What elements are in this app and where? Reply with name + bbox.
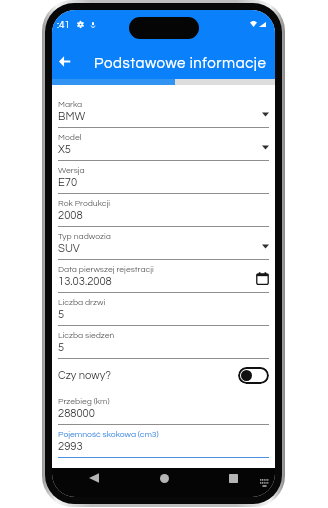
staticText: Podstawowe informacje bbox=[94, 56, 267, 71]
button[interactable]: Back bbox=[54, 50, 76, 72]
staticText: Model bbox=[58, 133, 82, 142]
staticText: 5 bbox=[58, 342, 65, 354]
button[interactable]: Liczba siedzeń bbox=[58, 326, 269, 359]
staticText: Liczba drzwi bbox=[58, 298, 106, 307]
button[interactable]: Liczba drzwi bbox=[58, 293, 269, 326]
staticText: Wersja bbox=[58, 166, 85, 175]
button[interactable]: Typ nadwozia bbox=[58, 227, 269, 260]
staticText: SUV bbox=[58, 243, 80, 255]
button[interactable]: Marka bbox=[58, 95, 269, 128]
button[interactable]: Data pierwszej rejestracji bbox=[58, 260, 269, 293]
staticText: Przebieg (km) bbox=[58, 397, 110, 406]
button[interactable]: Wersja bbox=[58, 161, 269, 194]
staticText: Data pierwszej rejestracji bbox=[58, 265, 154, 274]
staticText: E70 bbox=[58, 177, 78, 189]
button[interactable]: Czy nowy? bbox=[58, 359, 269, 392]
staticText: X5 bbox=[58, 144, 72, 156]
staticText: Czy nowy? bbox=[58, 370, 111, 382]
staticText: 2008 bbox=[58, 210, 83, 222]
button[interactable]: Home bbox=[154, 468, 174, 488]
staticText: BMW bbox=[58, 111, 86, 123]
button[interactable]: Przebieg (km) bbox=[58, 392, 269, 425]
staticText: Pojemność skokowa (cm3) bbox=[58, 430, 159, 439]
button[interactable]: Switch keyboard bbox=[257, 476, 271, 490]
staticText: Marka bbox=[58, 100, 83, 109]
staticText: 288000 bbox=[58, 408, 95, 420]
button[interactable]: Rok Produkcji bbox=[58, 194, 269, 227]
staticText: Typ nadwozia bbox=[58, 232, 111, 241]
button[interactable]: Model bbox=[58, 128, 269, 161]
button[interactable]: Pojemność skokowa (cm3) bbox=[58, 425, 269, 458]
staticText: Liczba siedzeń bbox=[58, 331, 115, 340]
staticText: Rok Produkcji bbox=[58, 199, 111, 208]
staticText: 2993 bbox=[58, 441, 83, 453]
staticText: 5 bbox=[58, 309, 65, 321]
button[interactable]: Recent apps bbox=[223, 468, 243, 488]
button[interactable]: Back bbox=[84, 468, 104, 488]
staticText: :41 bbox=[57, 20, 71, 30]
staticText: 13.03.2008 bbox=[58, 276, 112, 288]
